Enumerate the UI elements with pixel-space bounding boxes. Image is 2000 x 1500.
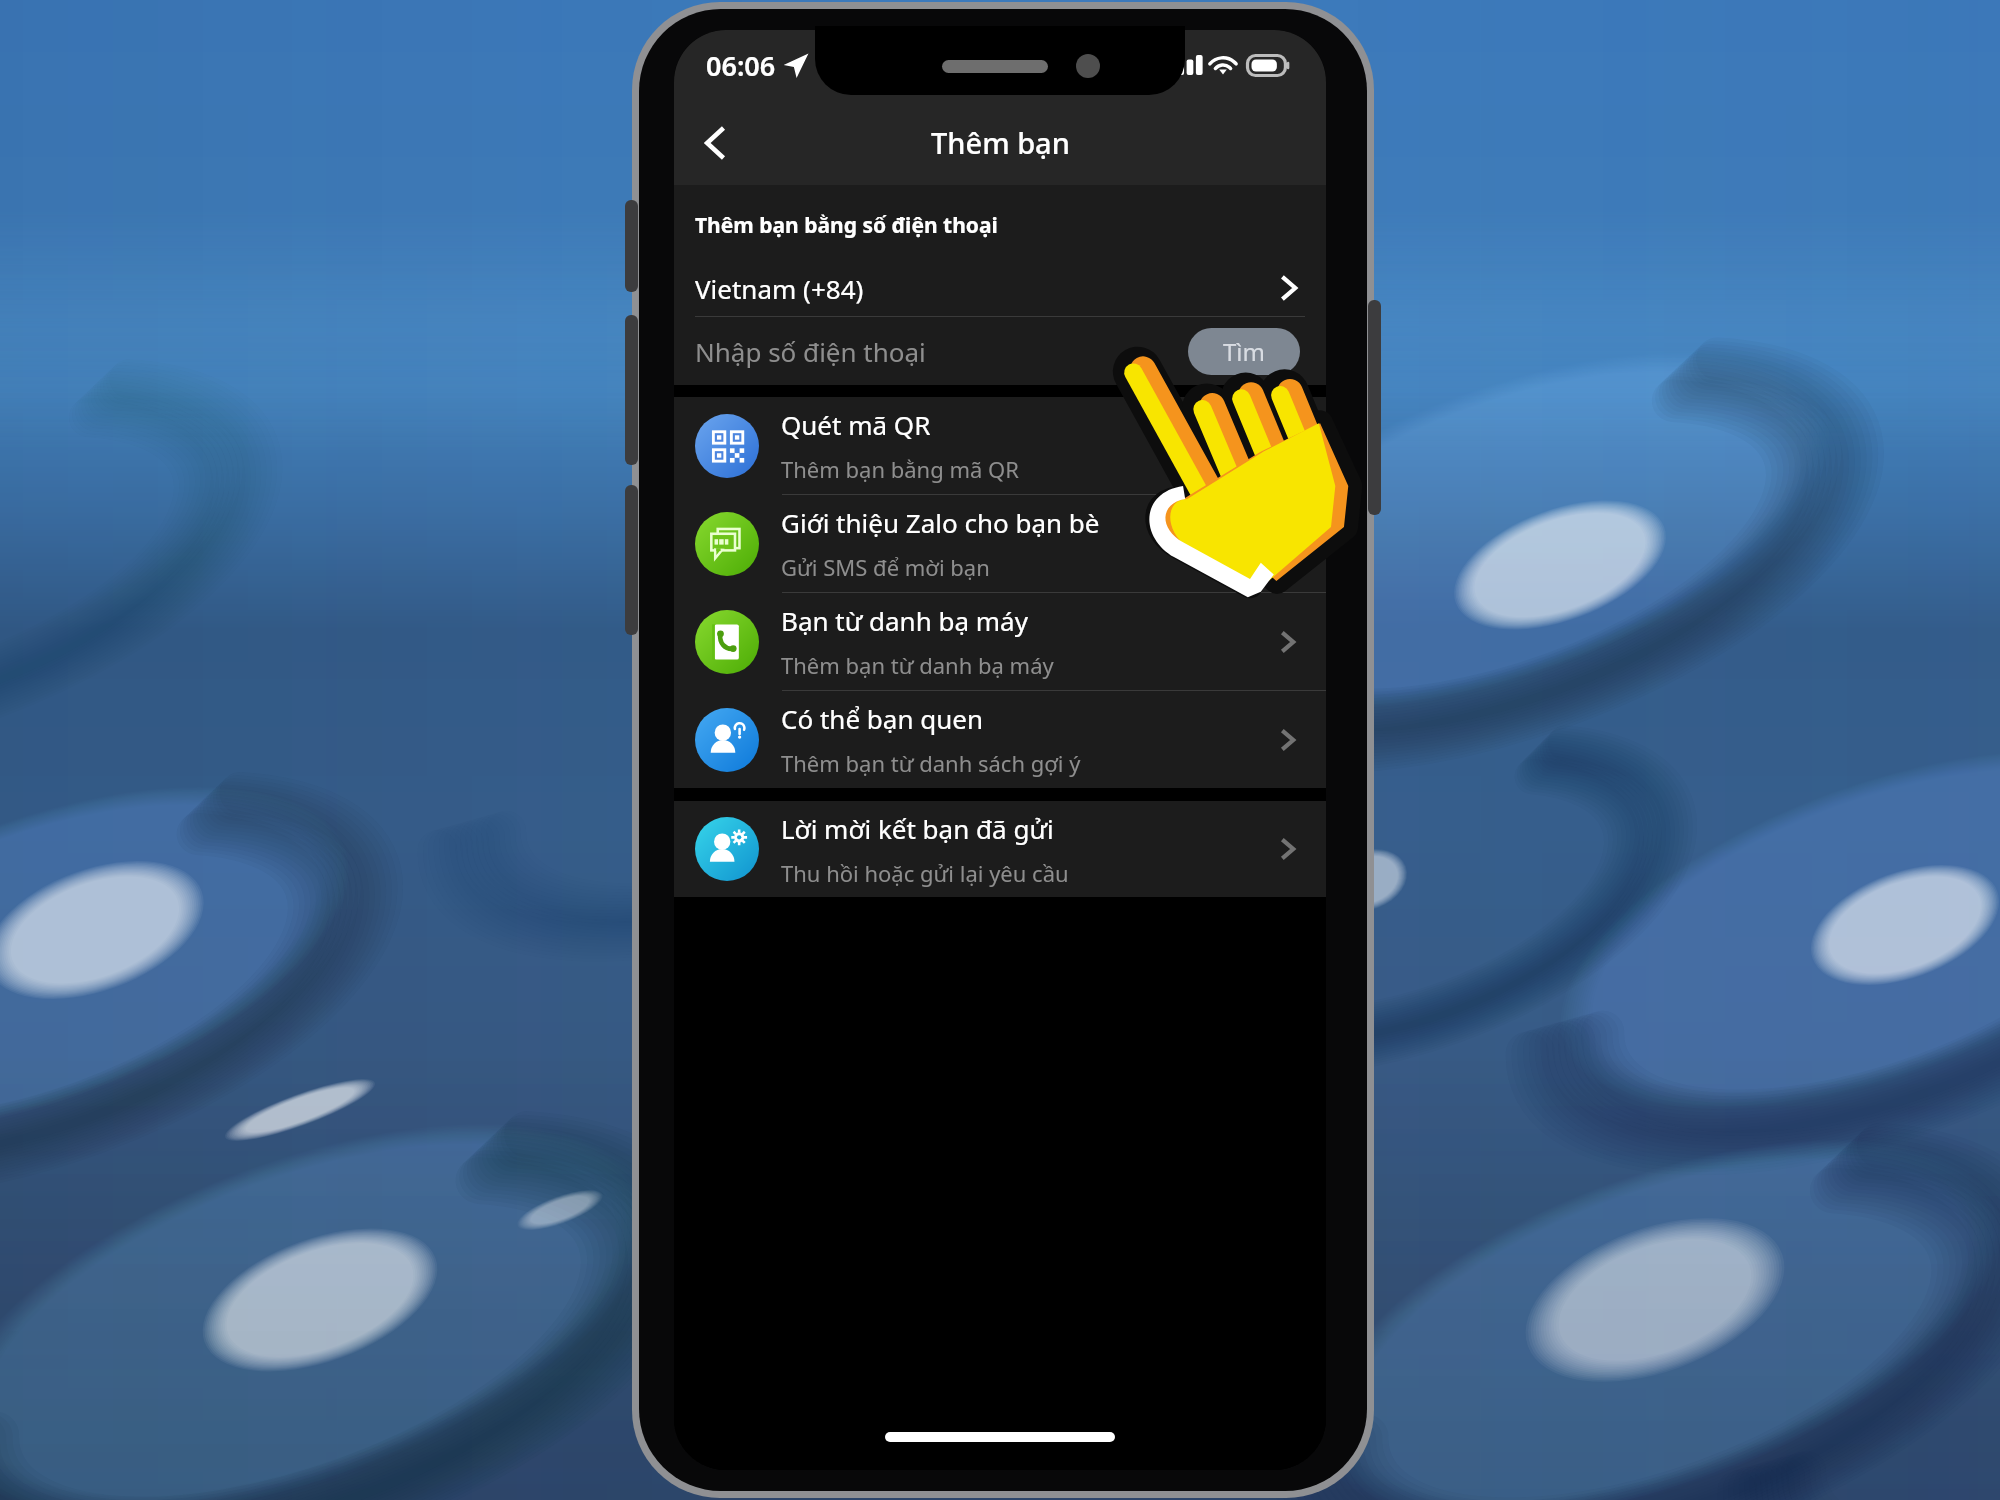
button[interactable]: Giới thiệu Zalo cho bạn bè bbox=[674, 495, 1326, 592]
button[interactable]: Back bbox=[684, 111, 748, 175]
staticText: Tìm bbox=[1223, 335, 1265, 368]
staticText: 06:06 bbox=[706, 47, 776, 84]
button[interactable]: Bạn từ danh bạ máy bbox=[674, 593, 1326, 690]
button[interactable]: Có thể bạn quen bbox=[674, 691, 1326, 788]
button[interactable]: Quét mã QR bbox=[674, 397, 1326, 494]
staticText: Quét mã QR bbox=[781, 407, 931, 442]
button[interactable]: Vietnam (+84) bbox=[674, 260, 1326, 316]
button[interactable]: Tìm bbox=[1188, 328, 1300, 375]
staticText: Thu hồi hoặc gửi lại yêu cầu bbox=[781, 858, 1069, 888]
button[interactable]: Lời mời kết bạn đã gửi bbox=[674, 801, 1326, 897]
staticText: Thêm bạn từ danh sách gợi ý bbox=[781, 748, 1081, 778]
staticText: Vietnam (+84) bbox=[695, 271, 864, 306]
staticText: Thêm bạn bằng số điện thoại bbox=[695, 211, 998, 240]
staticText: Lời mời kết bạn đã gửi bbox=[781, 811, 1054, 846]
staticText: Nhập số điện thoại bbox=[695, 334, 926, 369]
staticText: Thêm bạn bbox=[931, 123, 1070, 162]
staticText: Bạn từ danh bạ máy bbox=[781, 603, 1028, 638]
staticText: Thêm bạn bằng mã QR bbox=[781, 454, 1019, 484]
staticText: Gửi SMS để mời bạn bbox=[781, 552, 990, 582]
staticText: Có thể bạn quen bbox=[781, 701, 983, 736]
staticText: Giới thiệu Zalo cho bạn bè bbox=[781, 505, 1100, 540]
staticText: Thêm bạn từ danh bạ máy bbox=[781, 650, 1054, 680]
